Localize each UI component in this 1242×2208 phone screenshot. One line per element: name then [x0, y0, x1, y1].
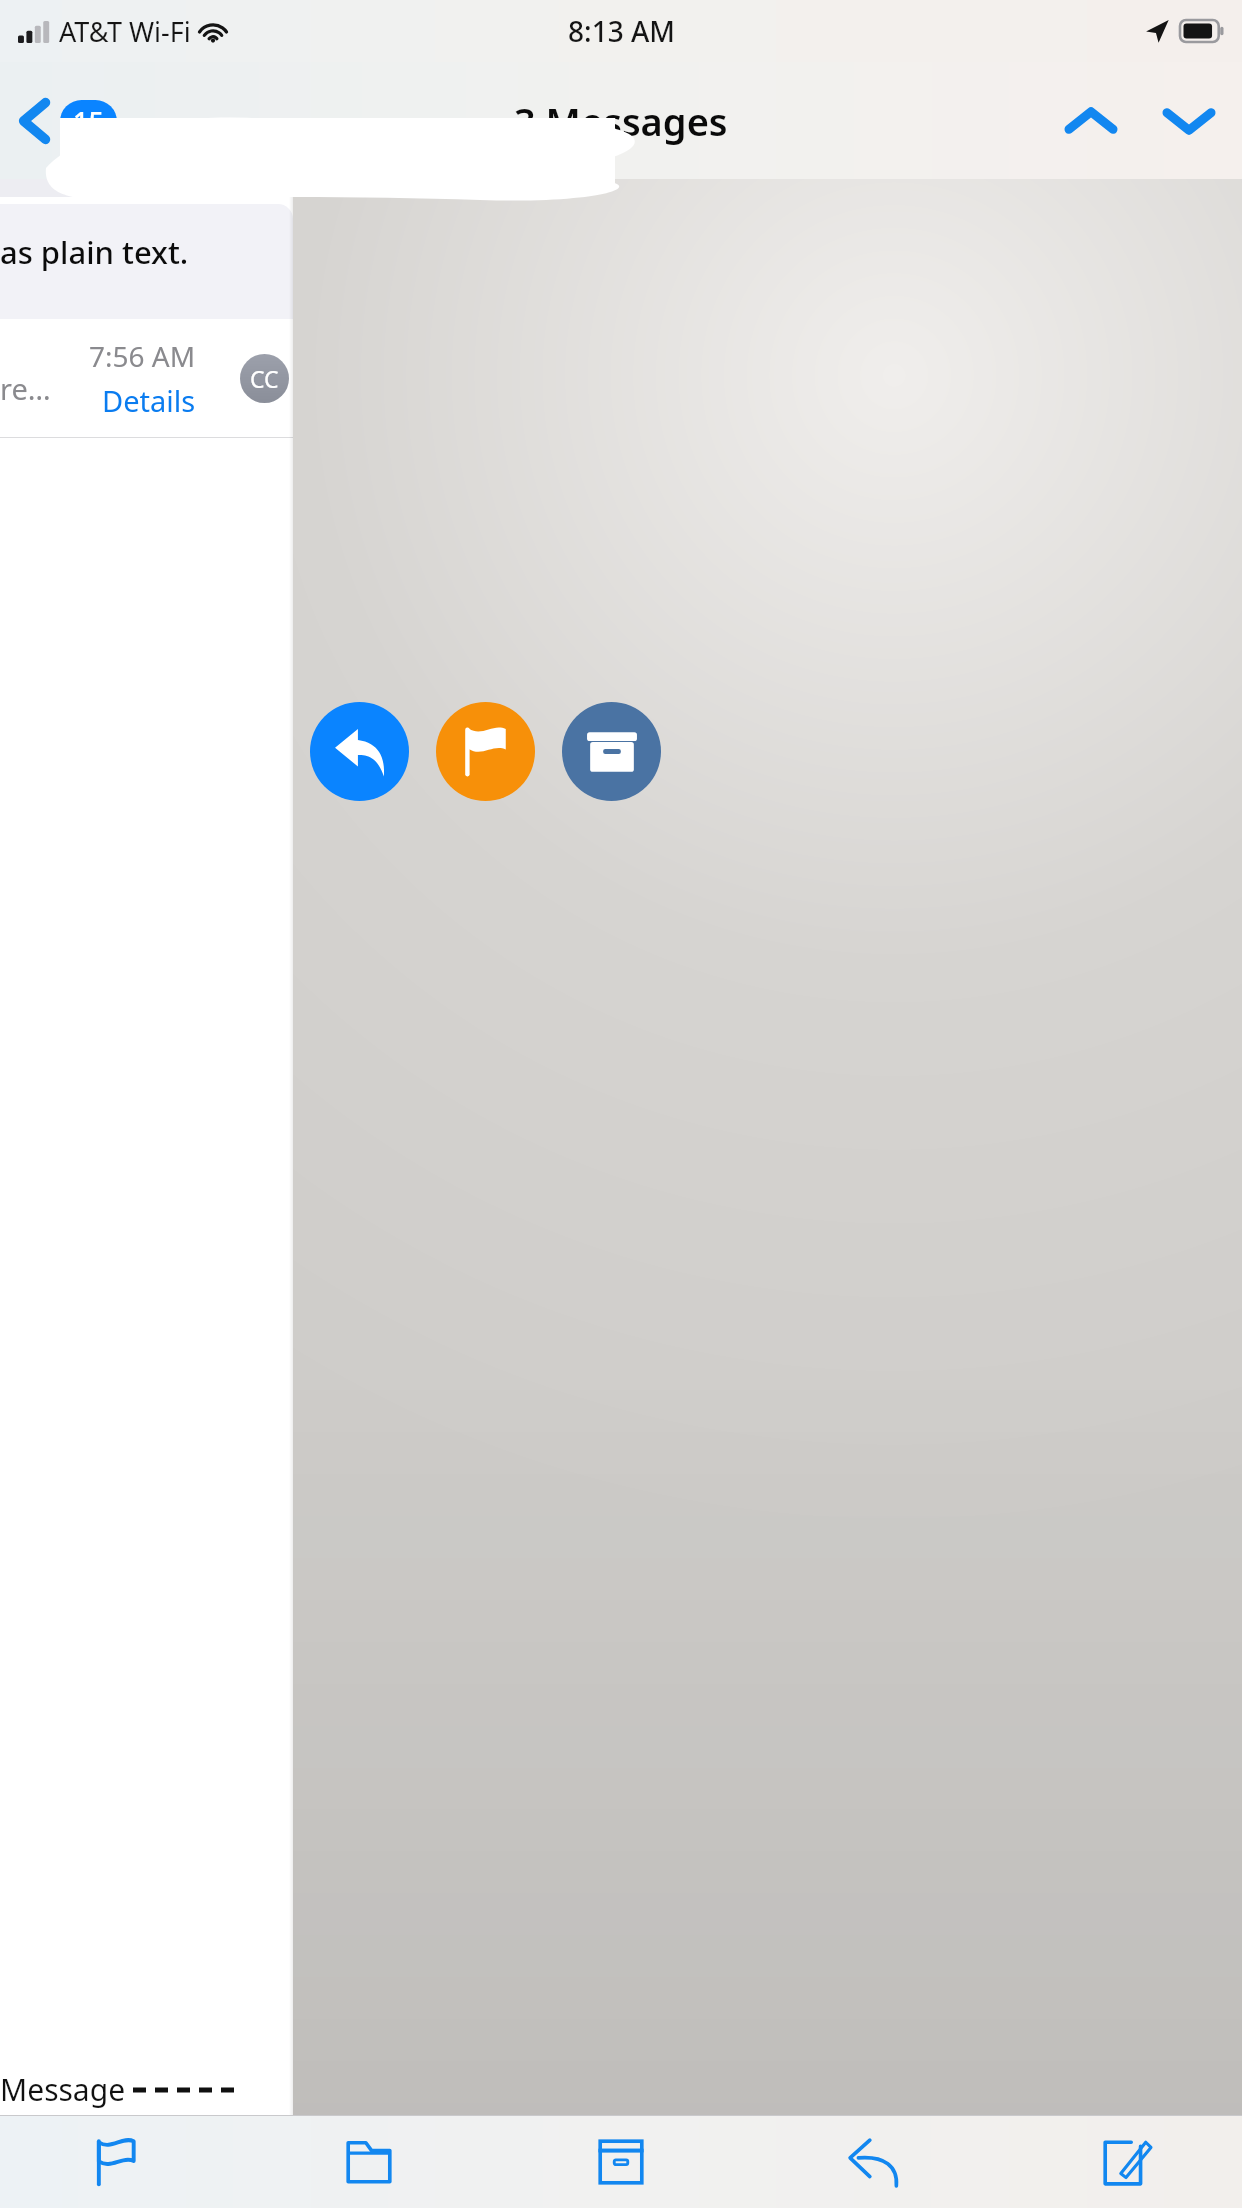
button[interactable]: Details: [102, 381, 196, 420]
button[interactable]: Compose: [1026, 2115, 1226, 2208]
button[interactable]: Reply: [310, 702, 409, 801]
staticText: AT&T Wi-Fi: [59, 13, 191, 50]
button[interactable]: Archive: [521, 2115, 721, 2208]
staticText: re…: [0, 369, 51, 408]
staticText: 3 Messages: [514, 95, 728, 147]
button[interactable]: Flag: [16, 2115, 216, 2208]
button[interactable]: Back, 15 unread: [14, 90, 123, 152]
button[interactable]: Reply: [774, 2115, 974, 2208]
button[interactable]: Archive: [562, 702, 661, 801]
staticText: CC: [250, 363, 279, 394]
button[interactable]: Next message: [1158, 90, 1220, 152]
staticText: as plain text.: [0, 231, 189, 273]
button[interactable]: CC: [240, 354, 289, 403]
staticText: 8:13 AM: [568, 12, 675, 50]
staticText: 15: [73, 103, 104, 140]
staticText: Message: [0, 2069, 133, 2110]
button[interactable]: Flag: [436, 702, 535, 801]
button[interactable]: Previous message: [1060, 90, 1122, 152]
button[interactable]: Move to folder: [269, 2115, 469, 2208]
staticText: Details: [102, 381, 196, 420]
staticText: 7:56 AM: [89, 337, 196, 375]
